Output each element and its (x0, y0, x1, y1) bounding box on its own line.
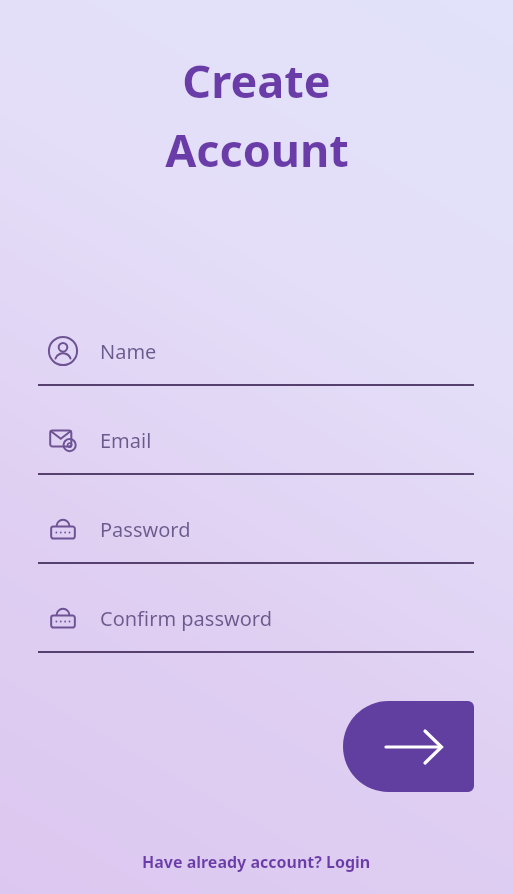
staticText: Name (100, 338, 157, 365)
button[interactable]: Email (38, 427, 474, 475)
staticText: Create (182, 50, 331, 111)
staticText: Password (100, 516, 191, 543)
staticText: Email (100, 427, 152, 454)
other: Sign up (386, 730, 442, 764)
button[interactable]: Sign up (343, 701, 474, 792)
staticText: Confirm password (100, 605, 272, 632)
button[interactable]: Name (38, 338, 474, 386)
staticText: Account (165, 119, 349, 180)
staticText: Have already account? Login (142, 851, 371, 873)
button[interactable]: Confirm password (38, 605, 474, 653)
button[interactable]: Have already account? Login (132, 848, 381, 876)
button[interactable]: Password (38, 516, 474, 564)
